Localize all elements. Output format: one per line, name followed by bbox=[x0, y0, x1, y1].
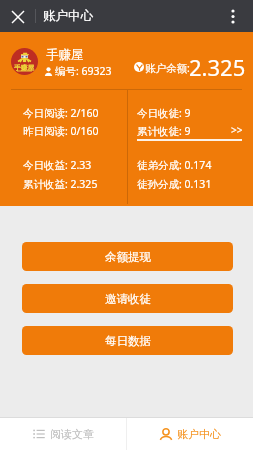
staticText: 编号: 69323 bbox=[55, 64, 112, 78]
staticText: 余额提现 bbox=[105, 250, 151, 264]
staticText: >> bbox=[231, 123, 243, 137]
button[interactable]: 余额提现 bbox=[22, 242, 233, 271]
staticText: 2.325 bbox=[189, 52, 246, 82]
staticText: 手赚屋 bbox=[14, 63, 35, 72]
button[interactable]: 账户中心 bbox=[127, 418, 253, 450]
staticText: 徒弟分成: 0.174 bbox=[137, 158, 212, 172]
staticText: 每日数据 bbox=[105, 334, 151, 348]
staticText: 累计收徒: 9 bbox=[137, 124, 191, 138]
button[interactable]: 今日阅读: 2/160 bbox=[0, 90, 126, 140]
staticText: 今日收益: 2.33 bbox=[23, 158, 92, 172]
staticText: 徒孙分成: 0.131 bbox=[137, 177, 212, 191]
staticText: 账户中心 bbox=[177, 427, 221, 441]
staticText: 阅读文章 bbox=[50, 427, 94, 441]
button[interactable]: More options bbox=[219, 2, 247, 30]
staticText: 今日阅读: 2/160 bbox=[23, 106, 99, 120]
button[interactable]: 每日数据 bbox=[22, 326, 233, 355]
staticText: 手赚屋 bbox=[46, 47, 84, 63]
staticText: 昨日阅读: 0/160 bbox=[23, 124, 99, 138]
staticText: 账户余额: bbox=[145, 61, 190, 75]
button[interactable]: 徒弟分成: 0.174 bbox=[127, 141, 253, 206]
button[interactable]: Close bbox=[2, 1, 33, 32]
button[interactable]: 今日收益: 2.33 bbox=[0, 141, 126, 206]
staticText: 邀请收徒 bbox=[105, 292, 151, 306]
button[interactable]: 手赚屋 bbox=[0, 32, 253, 89]
button[interactable]: 阅读文章 bbox=[0, 418, 126, 450]
staticText: 累计收益: 2.325 bbox=[23, 177, 98, 191]
button[interactable]: 邀请收徒 bbox=[22, 284, 233, 313]
button[interactable]: 今日收徒: 9 bbox=[127, 90, 253, 140]
staticText: 账户中心 bbox=[43, 8, 93, 24]
staticText: 今日收徒: 9 bbox=[137, 106, 191, 120]
